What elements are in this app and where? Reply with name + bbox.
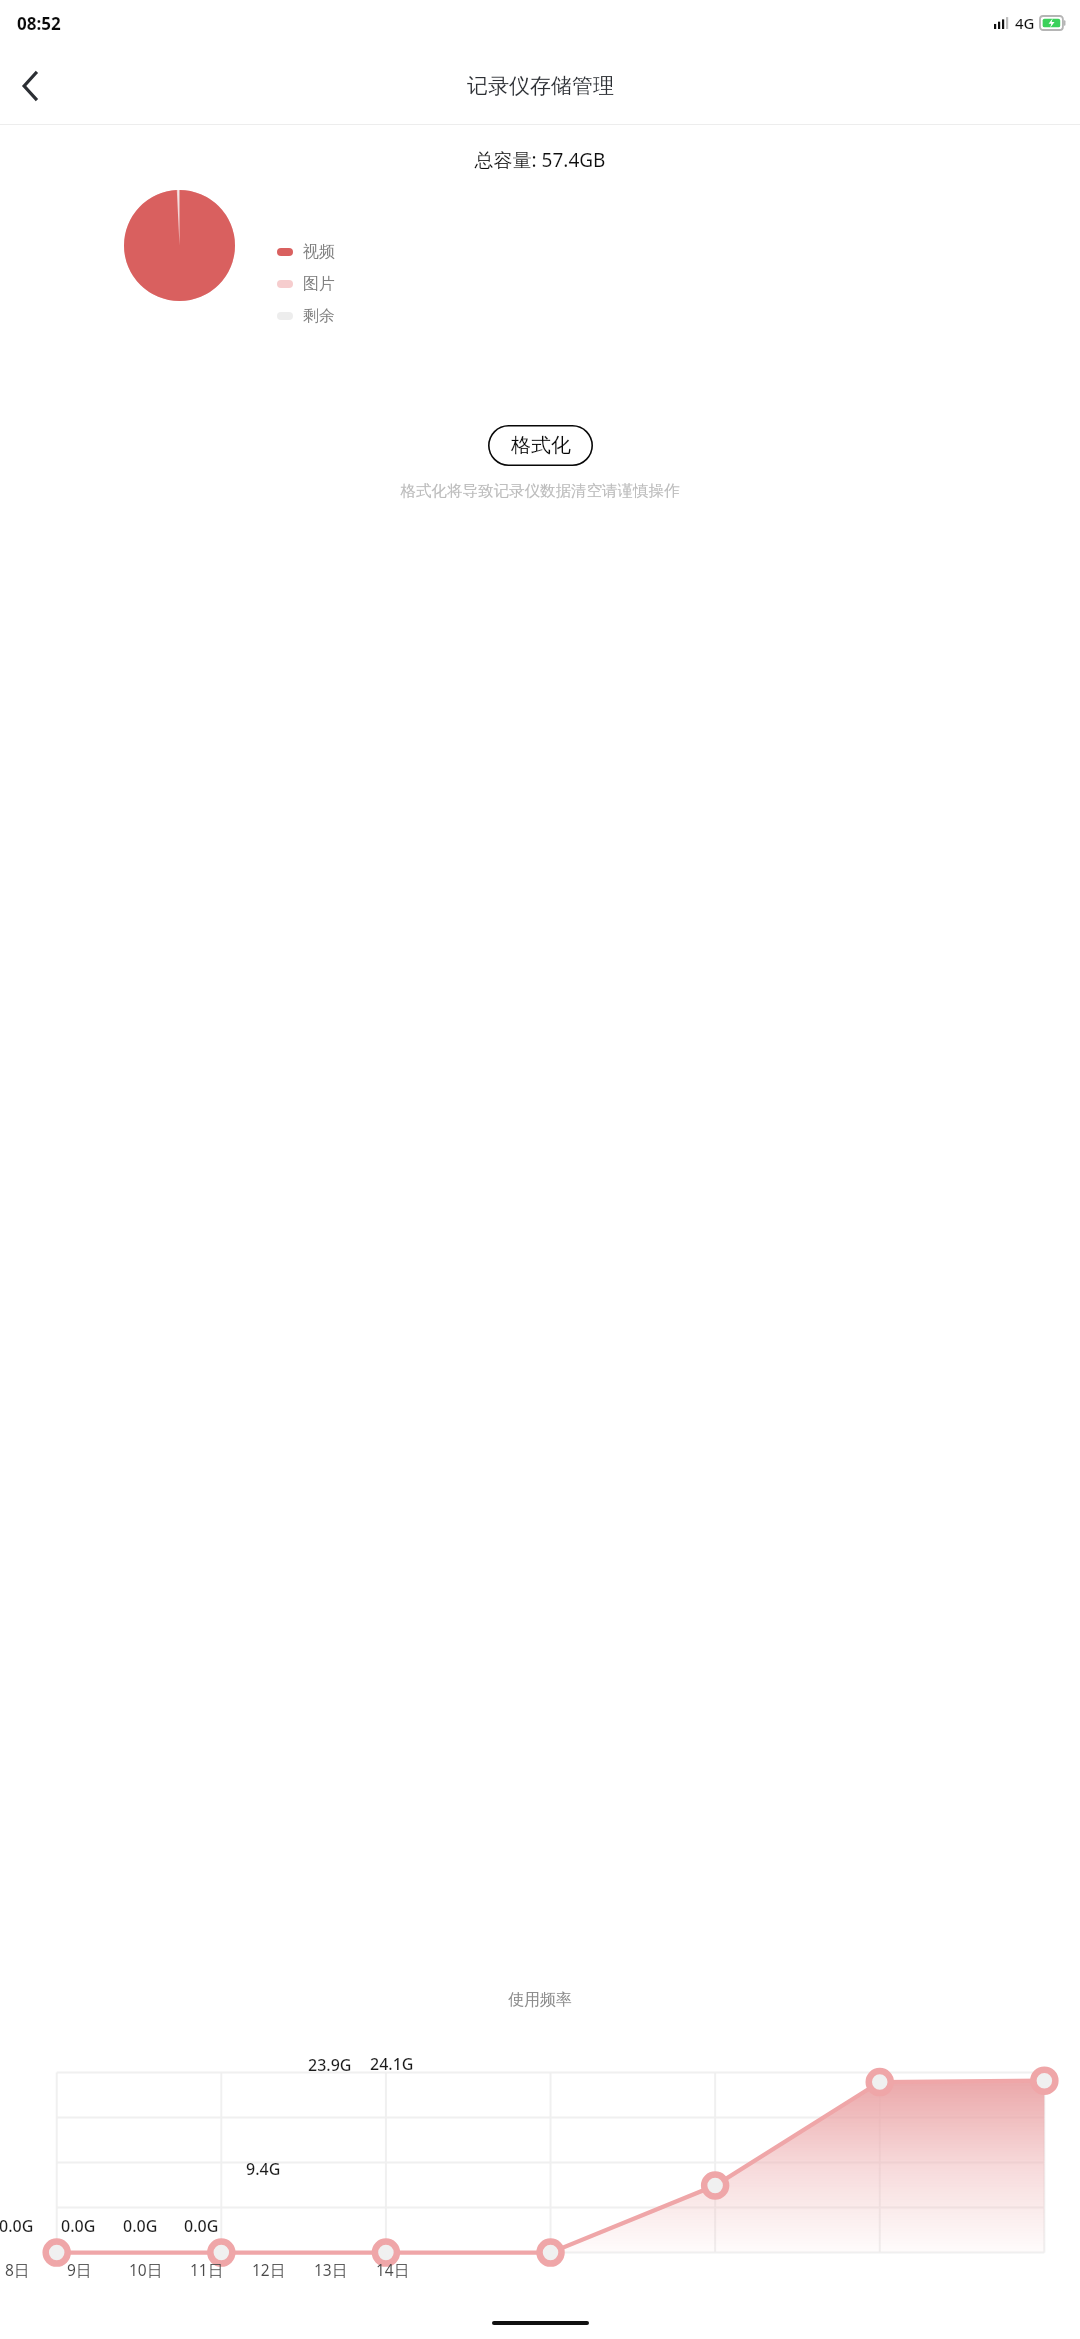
staticText: 格式化将导致记录仪数据清空请谨慎操作	[0, 481, 1080, 501]
button[interactable]: 格式化	[488, 425, 593, 466]
staticText: 总容量: 57.4GB	[0, 147, 1080, 173]
staticText: 0.0G	[123, 2215, 158, 2237]
staticText: 13日	[314, 2259, 348, 2280]
staticText: 9日	[67, 2259, 92, 2280]
staticText: 24.1G	[370, 2053, 414, 2075]
staticText: 0.0G	[0, 2215, 34, 2237]
staticText: 23.9G	[308, 2054, 352, 2076]
staticText: 4G	[1015, 13, 1035, 33]
staticText: 0.0G	[61, 2215, 96, 2237]
button[interactable]: Back	[0, 56, 60, 116]
staticText: 视频	[303, 242, 335, 262]
staticText: 08:52	[17, 12, 61, 35]
staticText: 8日	[5, 2259, 30, 2280]
staticText: 格式化	[511, 433, 571, 458]
staticText: 11日	[190, 2259, 224, 2280]
staticText: 14日	[376, 2259, 410, 2280]
staticText: 10日	[129, 2259, 163, 2280]
staticText: 图片	[303, 274, 335, 294]
staticText: 剩余	[303, 306, 335, 326]
staticText: 9.4G	[246, 2158, 281, 2180]
staticText: 使用频率	[0, 1990, 1080, 2010]
staticText: 记录仪存储管理	[467, 73, 614, 99]
staticText: 12日	[252, 2259, 286, 2280]
staticText: 0.0G	[184, 2215, 219, 2237]
